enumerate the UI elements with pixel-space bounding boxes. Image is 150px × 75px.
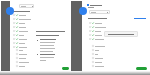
button[interactable] — [13, 33, 33, 37]
button[interactable] — [13, 25, 33, 29]
button[interactable] — [13, 56, 33, 60]
other: Step 2 — [79, 7, 87, 15]
button[interactable] — [89, 60, 109, 64]
button[interactable] — [19, 4, 34, 8]
button[interactable] — [89, 48, 109, 52]
button[interactable] — [13, 29, 33, 33]
other: Step 1 — [6, 7, 14, 15]
button[interactable] — [13, 37, 33, 41]
button[interactable] — [13, 48, 33, 52]
button[interactable] — [89, 37, 109, 41]
button[interactable] — [13, 17, 33, 21]
button[interactable] — [13, 60, 33, 64]
button[interactable] — [13, 45, 33, 49]
button[interactable] — [13, 64, 33, 68]
button[interactable] — [89, 56, 109, 60]
button[interactable] — [62, 67, 69, 70]
button[interactable] — [89, 21, 109, 25]
button[interactable] — [89, 33, 109, 37]
button[interactable] — [89, 64, 109, 68]
button[interactable] — [13, 41, 33, 45]
button[interactable] — [89, 25, 109, 29]
button[interactable] — [13, 13, 33, 17]
button[interactable] — [13, 52, 33, 56]
button[interactable] — [89, 10, 110, 14]
button[interactable] — [89, 52, 109, 56]
button[interactable] — [136, 67, 147, 70]
button[interactable] — [89, 29, 109, 33]
button[interactable] — [89, 44, 109, 48]
button[interactable] — [13, 21, 33, 25]
